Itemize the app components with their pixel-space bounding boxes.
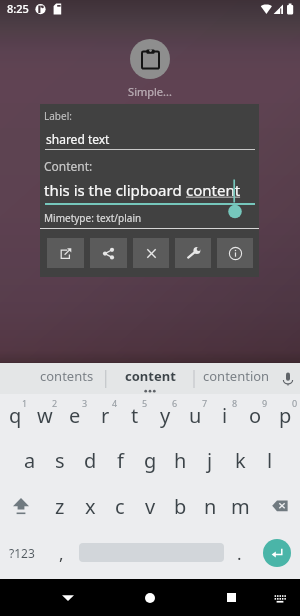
staticText: y <box>160 402 171 429</box>
button[interactable]: t <box>120 390 150 434</box>
staticText: g <box>144 447 157 474</box>
staticText: h <box>174 447 187 474</box>
button[interactable]: Symbols <box>4 531 40 575</box>
button[interactable]: v <box>135 484 165 528</box>
staticText: Simple... <box>128 84 172 99</box>
button[interactable]: m <box>225 484 255 528</box>
staticText: Content: <box>44 158 93 174</box>
staticText: t <box>131 402 139 429</box>
staticText: content <box>186 180 241 200</box>
staticText: 3 <box>82 397 88 409</box>
button[interactable]: Info <box>217 238 253 268</box>
button[interactable]: contents <box>0 363 106 394</box>
staticText: x <box>85 493 96 520</box>
button[interactable]: Voice input <box>275 363 300 394</box>
staticText: i <box>222 402 228 429</box>
button[interactable]: Open externally <box>47 238 84 268</box>
button[interactable]: , <box>48 531 74 575</box>
staticText: ?123 <box>9 545 35 561</box>
button[interactable]: o <box>240 390 270 434</box>
button[interactable]: contention <box>194 363 276 394</box>
button[interactable]: Home <box>127 579 172 616</box>
staticText: 4 <box>112 397 118 409</box>
staticText: k <box>235 447 246 474</box>
button[interactable]: p <box>270 390 300 434</box>
button[interactable]: r <box>90 390 120 434</box>
staticText: 2 <box>52 397 58 409</box>
button[interactable]: Share <box>90 238 127 268</box>
button[interactable]: e <box>60 390 90 434</box>
staticText: . <box>237 542 242 565</box>
staticText: , <box>59 542 64 565</box>
button[interactable]: i <box>210 390 240 434</box>
staticText: p <box>279 402 292 429</box>
button[interactable]: w <box>30 390 60 434</box>
staticText: e <box>69 402 81 429</box>
staticText: z <box>55 493 65 520</box>
staticText: w <box>37 402 53 429</box>
staticText: u <box>189 402 202 429</box>
staticText: Label: <box>44 109 72 123</box>
staticText: 0 <box>292 397 298 409</box>
staticText: d <box>84 447 97 474</box>
button[interactable]: u <box>180 390 210 434</box>
staticText: r <box>101 402 110 429</box>
button[interactable]: g <box>135 438 165 482</box>
button[interactable]: Recents <box>209 579 254 616</box>
button[interactable]: Simple Clipboard <box>130 39 170 79</box>
button[interactable]: Close <box>133 238 169 268</box>
button[interactable]: Enter <box>263 539 291 567</box>
staticText: 7 <box>202 397 208 409</box>
staticText: 5 <box>142 397 148 409</box>
button[interactable]: a <box>15 438 45 482</box>
staticText: 9 <box>262 397 268 409</box>
staticText: b <box>174 493 187 520</box>
staticText: l <box>267 447 273 474</box>
button[interactable]: Back <box>45 579 90 616</box>
staticText: c <box>115 493 125 520</box>
staticText: f <box>117 447 124 474</box>
button[interactable]: content <box>106 363 194 394</box>
staticText: 8 <box>232 397 238 409</box>
staticText: content <box>125 367 176 385</box>
staticText: v <box>145 493 156 520</box>
button[interactable]: q <box>0 390 30 434</box>
button[interactable]: c <box>105 484 135 528</box>
button[interactable]: l <box>255 438 285 482</box>
staticText: n <box>204 493 217 520</box>
button[interactable]: . <box>226 531 252 575</box>
staticText: q <box>9 402 22 429</box>
staticText: this is the clipboard <box>44 180 186 200</box>
button[interactable]: x <box>75 484 105 528</box>
staticText: Mimetype: text/plain <box>44 211 142 225</box>
staticText: o <box>249 402 262 429</box>
button[interactable]: n <box>195 484 225 528</box>
button[interactable]: j <box>195 438 225 482</box>
button[interactable]: Switch keyboard <box>268 579 292 616</box>
button[interactable]: Backspace <box>265 484 295 528</box>
staticText: s <box>55 447 65 474</box>
button[interactable]: h <box>165 438 195 482</box>
button[interactable]: Shift <box>6 484 36 528</box>
button[interactable]: z <box>45 484 75 528</box>
staticText: shared text <box>46 131 110 147</box>
staticText: contents <box>40 367 94 385</box>
staticText: 8:25 <box>7 1 29 16</box>
staticText: contention <box>203 367 270 385</box>
staticText: 1 <box>22 397 28 409</box>
button[interactable]: d <box>75 438 105 482</box>
staticText: 6 <box>172 397 178 409</box>
staticText: a <box>24 447 36 474</box>
button[interactable]: f <box>105 438 135 482</box>
staticText: m <box>231 493 250 520</box>
button[interactable]: Settings <box>175 238 211 268</box>
staticText: j <box>207 447 213 474</box>
button[interactable]: s <box>45 438 75 482</box>
button[interactable]: k <box>225 438 255 482</box>
button[interactable]: b <box>165 484 195 528</box>
button[interactable]: y <box>150 390 180 434</box>
